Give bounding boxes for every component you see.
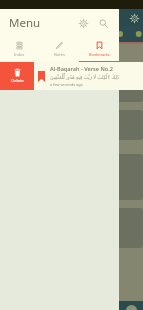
button[interactable]: Al-Baqarah - Verse No.2 [34, 62, 143, 90]
staticText: Notes [54, 52, 65, 57]
button[interactable]: Play [126, 305, 137, 310]
button[interactable]: Delete [0, 62, 34, 90]
staticText: ذَٰلِكَ ٱلْكِتَٰبُ لَا رَيْبَ فِيهِ هُدً… [50, 74, 120, 81]
staticText: a few seconds ago [50, 82, 83, 87]
staticText: Index [14, 52, 25, 57]
staticText: Menu [9, 15, 41, 31]
button[interactable]: Bookmarks [79, 36, 119, 62]
button[interactable]: Index [0, 36, 39, 62]
button[interactable]: Settings [128, 12, 140, 24]
staticText: Delete [11, 78, 24, 84]
button[interactable]: Notes [39, 36, 79, 62]
button[interactable]: Search [94, 14, 112, 32]
staticText: Al-Baqarah - Verse No.2 [50, 65, 113, 73]
button[interactable]: Settings [74, 14, 92, 32]
staticText: Bookmarks [89, 52, 110, 57]
